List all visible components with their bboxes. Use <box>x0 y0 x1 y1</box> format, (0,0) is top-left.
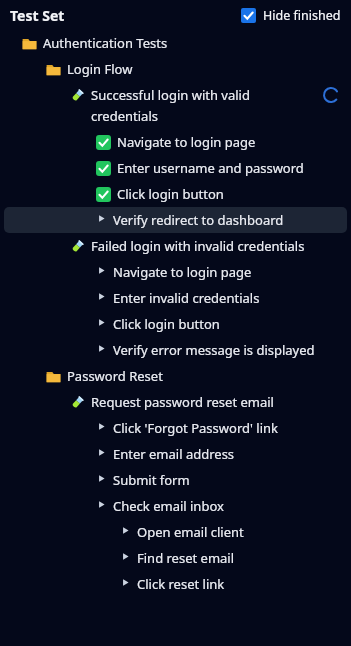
staticText: Enter invalid credentials <box>113 289 260 307</box>
staticText: Verify redirect to dashboard <box>113 211 284 229</box>
button[interactable]: Find reset email <box>4 545 347 571</box>
button[interactable]: Open email client <box>4 519 347 545</box>
button[interactable]: Login Flow <box>4 56 347 82</box>
staticText: Check email inbox <box>113 497 224 515</box>
staticText: Request password reset email <box>91 393 274 411</box>
staticText: Successful login with valid <box>91 86 250 104</box>
button[interactable]: Navigate to login page <box>4 129 347 155</box>
button[interactable]: Click 'Forgot Password' link <box>4 415 347 441</box>
button[interactable]: Verify redirect to dashboard <box>4 207 347 233</box>
staticText: credentials <box>91 107 158 125</box>
staticText: Click login button <box>113 315 220 333</box>
staticText: Password Reset <box>67 367 163 385</box>
button[interactable]: Verify error message is displayed <box>4 337 347 363</box>
staticText: Click reset link <box>137 575 225 593</box>
button[interactable]: Password Reset <box>4 363 347 389</box>
staticText: Find reset email <box>137 549 235 567</box>
staticText: Verify error message is displayed <box>113 341 315 359</box>
button[interactable]: Click login button <box>4 311 347 337</box>
button[interactable]: Enter invalid credentials <box>4 285 347 311</box>
button[interactable]: Successful login with valid <box>4 82 347 129</box>
staticText: Hide finished <box>263 7 341 24</box>
button[interactable]: Submit form <box>4 467 347 493</box>
button[interactable]: Authentication Tests <box>4 30 347 56</box>
staticText: Test Set <box>10 6 65 25</box>
staticText: Submit form <box>113 471 190 489</box>
button[interactable]: Request password reset email <box>4 389 347 415</box>
button[interactable]: Click reset link <box>4 571 347 597</box>
button[interactable]: Click login button <box>4 181 347 207</box>
button[interactable]: Navigate to login page <box>4 259 347 285</box>
staticText: Enter email address <box>113 445 235 463</box>
staticText: Click 'Forgot Password' link <box>113 419 278 437</box>
staticText: Navigate to login page <box>113 263 252 281</box>
staticText: Authentication Tests <box>43 34 168 52</box>
staticText: Enter username and password <box>117 159 304 177</box>
button[interactable]: Enter username and password <box>4 155 347 181</box>
staticText: Click login button <box>117 185 224 203</box>
button[interactable]: Enter email address <box>4 441 347 467</box>
button[interactable]: Failed login with invalid credentials <box>4 233 347 259</box>
staticText: Navigate to login page <box>117 133 256 151</box>
staticText: Failed login with invalid credentials <box>91 237 305 255</box>
staticText: Login Flow <box>67 60 133 78</box>
button[interactable]: Hide finished <box>239 5 343 26</box>
staticText: Open email client <box>137 523 244 541</box>
button[interactable]: Check email inbox <box>4 493 347 519</box>
